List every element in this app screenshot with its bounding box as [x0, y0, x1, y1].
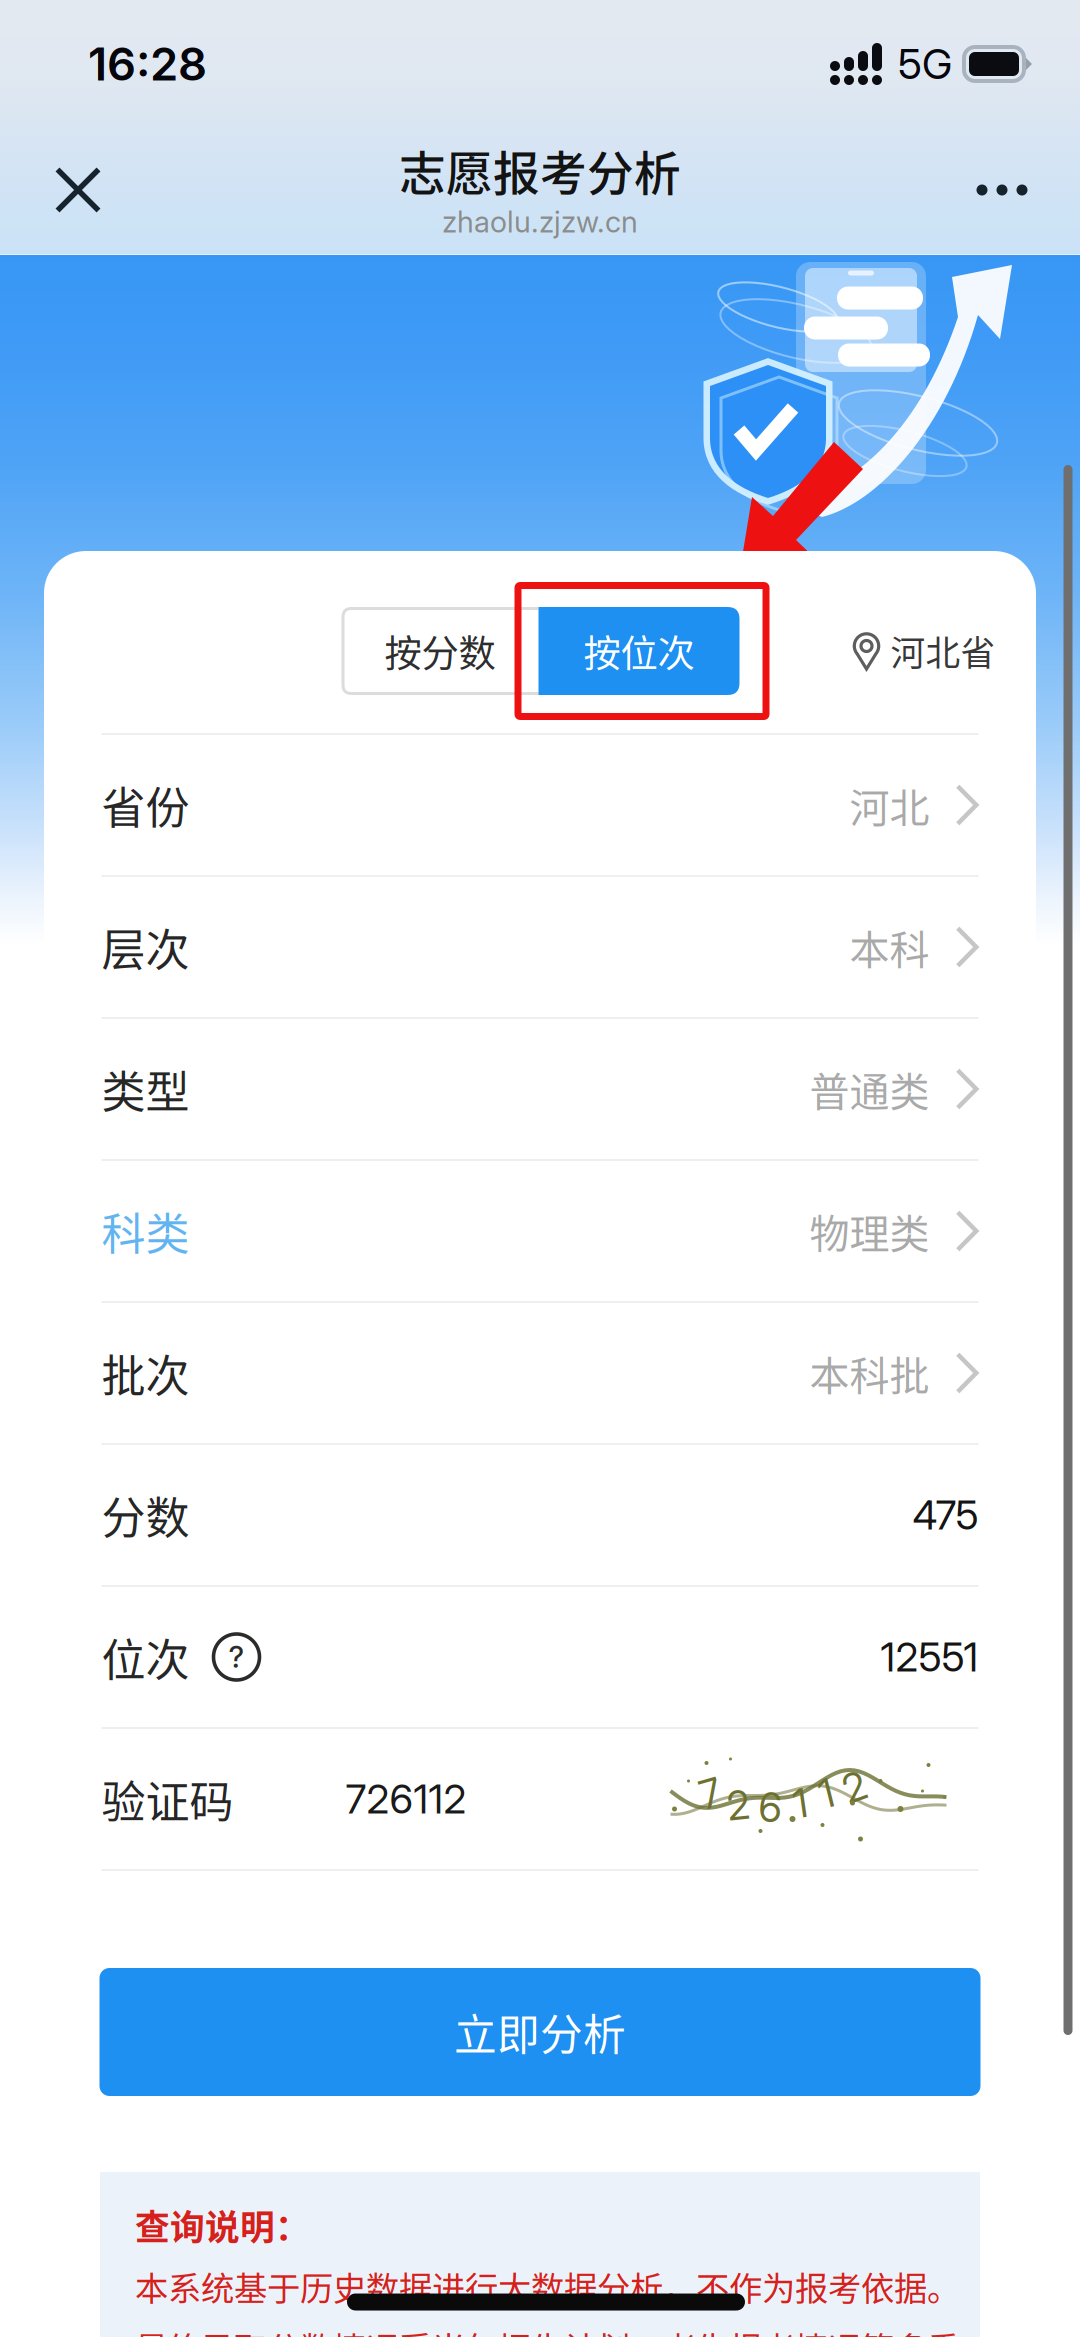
staticText: 位次 [101, 1625, 189, 1689]
staticText: 2 [843, 1763, 866, 1811]
staticText: 类型 [101, 1057, 189, 1121]
staticText: 志愿报考分析 [399, 136, 681, 204]
staticText: 7 [700, 1769, 721, 1817]
staticText: 本系统基于历史数据进行大数据分析，不作为报考依据。 [135, 2262, 960, 2310]
staticText: zhaolu.zjzw.cn [442, 204, 638, 239]
button[interactable]: More options [942, 130, 1062, 250]
button[interactable]: 按位次 [538, 607, 739, 695]
staticText: 按分数 [384, 624, 495, 678]
button[interactable]: 批次 [101, 1303, 978, 1443]
staticText: 河北省 [890, 626, 995, 676]
staticText: 最终录取分数情况受当年招生计划、考生报考情况等多重 [135, 2322, 960, 2337]
staticText: 726112 [345, 1775, 466, 1823]
staticText: 16:28 [88, 37, 207, 91]
staticText: 普通类 [809, 1060, 929, 1118]
staticText: 立即分析 [454, 2001, 626, 2063]
staticText: 1 [793, 1779, 808, 1827]
staticText: 12551 [880, 1633, 978, 1681]
staticText: 验证码 [101, 1767, 233, 1831]
button[interactable]: 层次 [101, 877, 978, 1017]
button[interactable]: 类型 [101, 1019, 978, 1159]
staticText: 层次 [101, 915, 189, 979]
button[interactable]: 按分数 [341, 607, 538, 695]
staticText: 查询说明： [135, 2200, 310, 2250]
staticText: 分数 [101, 1483, 189, 1547]
staticText: 本科批 [809, 1344, 929, 1402]
staticText: 批次 [101, 1341, 189, 1405]
staticText: 本科 [849, 918, 929, 976]
staticText: 5G [898, 39, 952, 89]
staticText: 河北 [849, 776, 929, 834]
staticText: 物理类 [809, 1202, 929, 1260]
staticText: 1 [819, 1769, 834, 1817]
staticText: 按位次 [583, 624, 694, 678]
button[interactable]: 省份 [101, 735, 978, 875]
staticText: ? [228, 1639, 244, 1675]
staticText: 省份 [101, 773, 189, 837]
staticText: 475 [912, 1491, 978, 1539]
button[interactable]: 河北省 [852, 611, 995, 691]
button[interactable]: 科类 [101, 1161, 978, 1301]
staticText: 科类 [101, 1199, 189, 1263]
button[interactable]: 立即分析 [99, 1968, 980, 2096]
staticText: 2 [727, 1781, 750, 1829]
staticText: 6 [758, 1783, 782, 1831]
button[interactable]: Close [18, 130, 138, 250]
